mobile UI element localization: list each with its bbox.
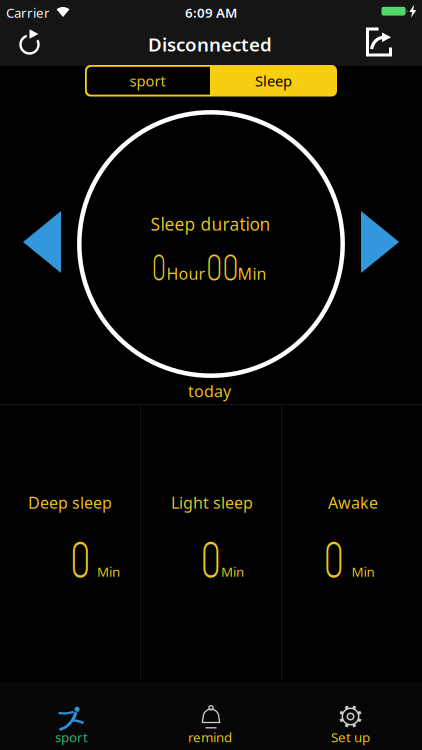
staticText: Disconnected: [148, 32, 272, 57]
staticText: 0: [66, 527, 95, 588]
staticText: 0: [196, 527, 225, 588]
staticText: Hour: [166, 263, 205, 284]
staticText: Sleep: [255, 71, 292, 90]
staticText: Min: [97, 563, 120, 580]
staticText: Sleep duration: [150, 212, 270, 235]
staticText: Awake: [328, 492, 378, 513]
staticText: Light sleep: [171, 492, 253, 513]
staticText: Deep sleep: [28, 492, 112, 513]
staticText: sport: [55, 728, 88, 746]
staticText: 6:09 AM: [185, 4, 237, 21]
staticText: Set up: [331, 728, 370, 746]
button[interactable]: sport: [85, 65, 210, 96]
staticText: Min: [221, 563, 244, 580]
button[interactable]: Sleep: [210, 65, 336, 96]
staticText: sport: [129, 71, 165, 90]
button[interactable]: sport: [0, 682, 140, 750]
staticText: Min: [237, 263, 266, 284]
button[interactable]: Previous day: [23, 211, 61, 273]
staticText: 0: [319, 527, 348, 588]
button[interactable]: Set up: [281, 682, 421, 750]
staticText: Carrier: [6, 4, 50, 21]
button[interactable]: remind: [140, 682, 281, 750]
button[interactable]: Next day: [361, 211, 399, 273]
button[interactable]: Share: [358, 23, 398, 63]
staticText: Min: [351, 563, 374, 580]
staticText: 0: [148, 243, 169, 288]
staticText: remind: [188, 728, 232, 746]
button[interactable]: Refresh: [10, 20, 50, 60]
staticText: today: [188, 380, 231, 402]
staticText: 00: [201, 243, 243, 288]
